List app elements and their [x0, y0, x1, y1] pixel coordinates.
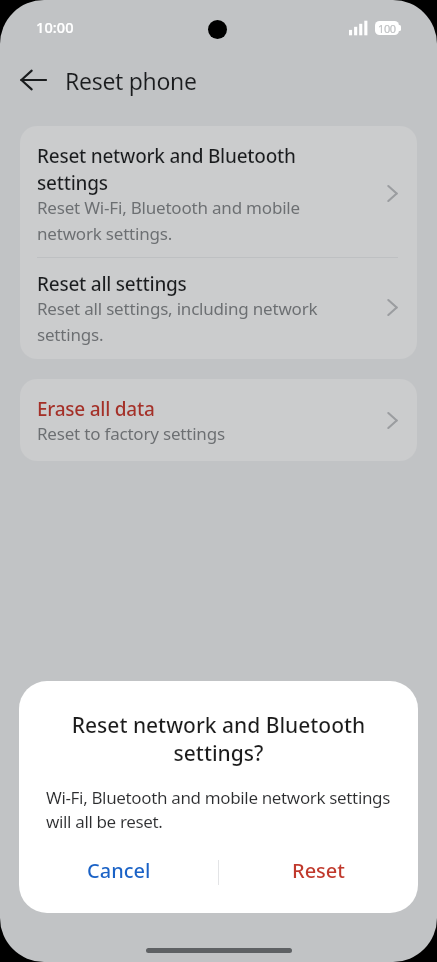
button[interactable]: Reset	[219, 844, 418, 896]
button[interactable]: Reset network and Bluetooth settings	[20, 126, 417, 257]
staticText: Reset network and Bluetooth settings?	[55, 711, 382, 767]
staticText: Reset phone	[65, 65, 197, 96]
staticText: Reset	[292, 857, 345, 884]
staticText: 100	[378, 21, 396, 35]
staticText: Reset network and Bluetooth settings	[37, 143, 352, 196]
button[interactable]: Erase all data	[20, 379, 417, 461]
button[interactable]: Back	[8, 58, 52, 102]
staticText: Erase all data	[37, 396, 155, 422]
staticText: Wi-Fi, Bluetooth and mobile network sett…	[46, 786, 396, 833]
button[interactable]: Reset all settings	[20, 258, 417, 359]
button[interactable]: Cancel	[19, 844, 218, 896]
staticText: Reset to factory settings	[37, 422, 225, 445]
staticText: Reset all settings, including network se…	[37, 297, 352, 346]
staticText: Cancel	[87, 857, 151, 884]
staticText: Reset all settings	[37, 271, 187, 297]
staticText: Reset Wi-Fi, Bluetooth and mobile networ…	[37, 196, 352, 245]
staticText: 10:00	[36, 17, 74, 37]
